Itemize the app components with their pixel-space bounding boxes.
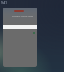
- staticText: Fastest route now: [12, 14, 33, 17]
- staticText: 9:41: [1, 1, 7, 5]
